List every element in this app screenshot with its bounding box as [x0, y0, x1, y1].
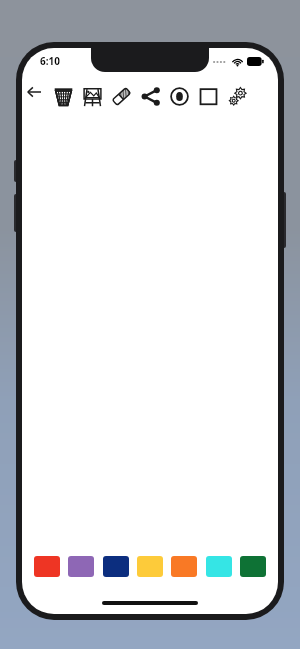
- button[interactable]: Eraser: [108, 80, 135, 112]
- button[interactable]: Settings: [224, 80, 251, 112]
- button[interactable]: Gallery: [79, 80, 106, 112]
- button[interactable]: Brush size: [166, 80, 193, 112]
- button[interactable]: Delete drawing: [50, 80, 77, 112]
- button[interactable]: Colour: [34, 556, 60, 577]
- button[interactable]: Colour: [103, 556, 129, 577]
- button[interactable]: Share: [137, 80, 164, 112]
- button[interactable]: Shape: [195, 80, 222, 112]
- button[interactable]: Colour: [240, 556, 266, 577]
- button[interactable]: Colour: [171, 556, 197, 577]
- button[interactable]: Colour: [137, 556, 163, 577]
- button[interactable]: Colour: [206, 556, 232, 577]
- button[interactable]: Colour: [68, 556, 94, 577]
- button[interactable]: Back: [22, 80, 46, 104]
- staticText: 6:10: [40, 54, 60, 68]
